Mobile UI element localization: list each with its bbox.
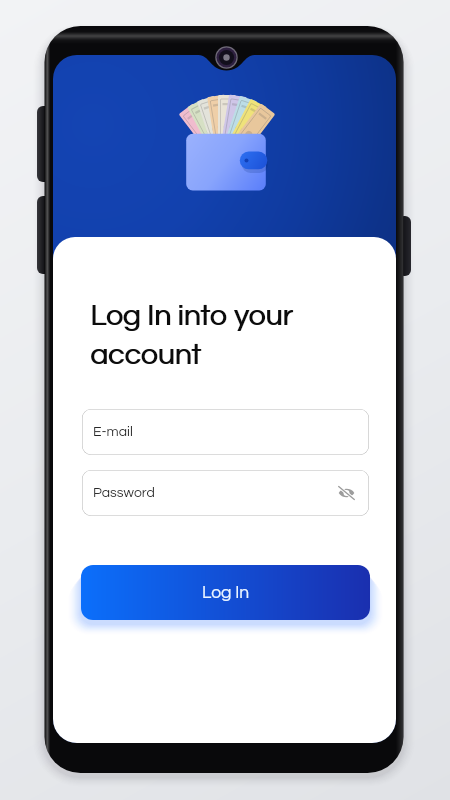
staticText: Log In into your account — [91, 300, 294, 370]
button[interactable]: Password — [82, 470, 369, 516]
staticText: E-mail — [93, 425, 133, 439]
button[interactable]: Log In — [81, 565, 370, 620]
button[interactable]: E-mail — [82, 409, 369, 455]
staticText: Log In — [202, 584, 250, 602]
button[interactable]: Show password — [338, 486, 355, 500]
staticText: Password — [93, 486, 155, 500]
staticText: Log In into your account — [90, 300, 293, 370]
